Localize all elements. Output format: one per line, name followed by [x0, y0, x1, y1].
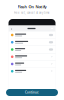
staticText: Free set, cancel at any time: [14, 11, 50, 14]
staticText: ‹: [11, 26, 12, 31]
button[interactable]: Continue: [6, 89, 58, 96]
staticText: Flash On Notify: [17, 4, 46, 9]
staticText: >: [51, 69, 53, 73]
staticText: Continue: [25, 91, 39, 94]
staticText: >: [51, 55, 53, 58]
staticText: >: [51, 62, 53, 66]
